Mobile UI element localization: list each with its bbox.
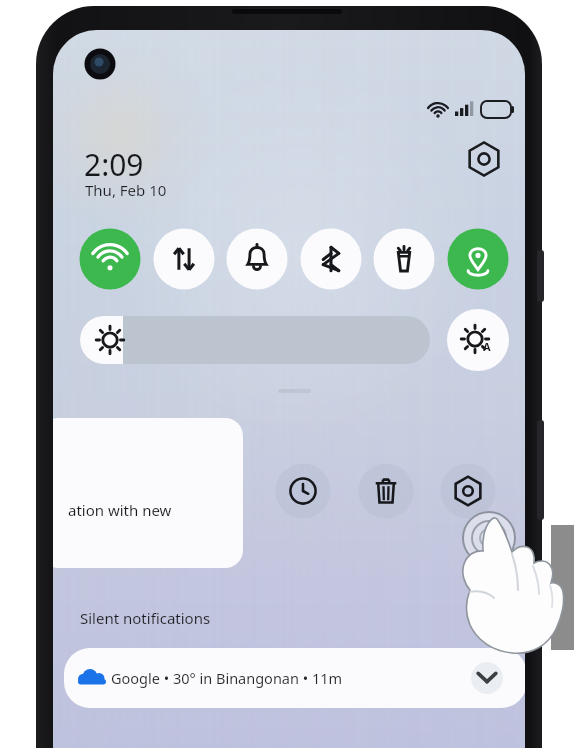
staticText: ation with new [68, 500, 172, 520]
button[interactable]: Auto brightness [447, 309, 509, 371]
button[interactable]: Location [448, 229, 509, 290]
button[interactable]: Delete [358, 463, 414, 519]
staticText: A [483, 339, 491, 354]
button[interactable]: Silent mode [227, 229, 288, 290]
button[interactable]: Notification [40, 418, 243, 568]
button[interactable]: Expand [471, 662, 503, 694]
button[interactable]: Brightness [80, 316, 430, 364]
staticText: Google • 30° in Binangonan • 11m [111, 668, 343, 688]
button[interactable] [64, 648, 527, 708]
staticText: Silent notifications [80, 608, 211, 628]
staticText: 2:09 [84, 144, 144, 185]
button[interactable]: Bluetooth [301, 229, 362, 290]
button[interactable]: Notification settings [440, 463, 496, 519]
button[interactable]: Flashlight [374, 229, 435, 290]
button[interactable]: Silent notifications [64, 598, 504, 638]
button[interactable]: Settings [464, 139, 504, 179]
button[interactable]: Mobile data [154, 229, 215, 290]
staticText: Thu, Feb 10 [85, 180, 167, 200]
button[interactable]: Wi-Fi [80, 229, 141, 290]
button[interactable]: Snooze [275, 463, 331, 519]
